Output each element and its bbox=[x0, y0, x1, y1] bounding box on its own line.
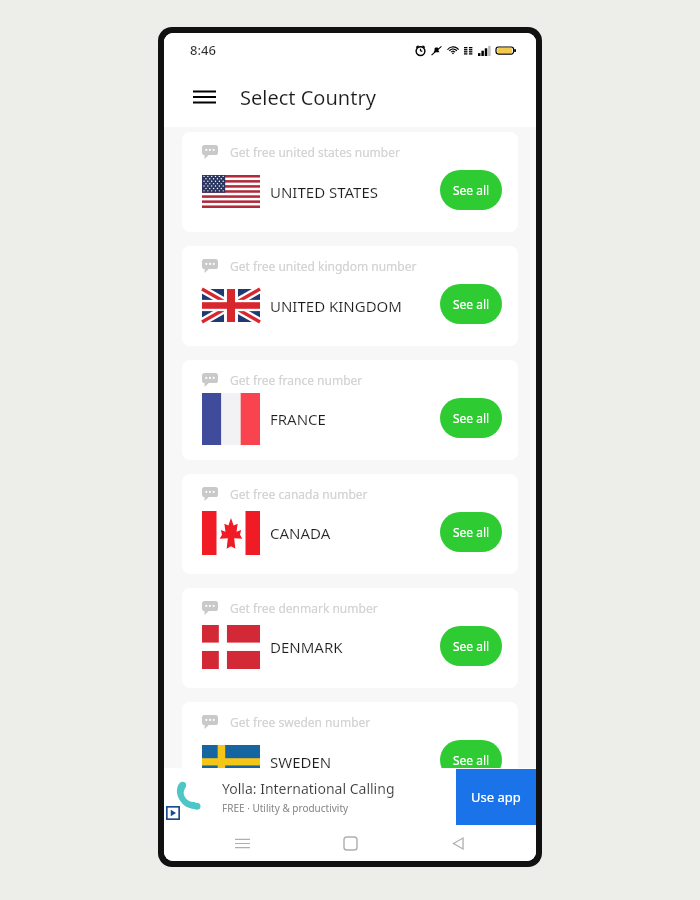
staticText: Select Country bbox=[240, 84, 376, 111]
staticText: See all bbox=[453, 182, 490, 198]
staticText: Yolla: International Calling bbox=[222, 779, 395, 798]
button[interactable]: See all bbox=[440, 398, 502, 438]
button[interactable]: Get free united kingdom number bbox=[182, 246, 518, 346]
staticText: FREE · Utility & productivity bbox=[222, 801, 349, 815]
button[interactable]: Get free france number bbox=[182, 360, 518, 460]
staticText: See all bbox=[453, 296, 490, 312]
staticText: See all bbox=[453, 410, 490, 426]
button[interactable]: Get free sweden number bbox=[182, 702, 518, 802]
button[interactable]: See all bbox=[440, 284, 502, 324]
staticText: CANADA bbox=[270, 523, 331, 543]
button[interactable]: Get free denmark number bbox=[182, 588, 518, 688]
staticText: See all bbox=[453, 524, 490, 540]
staticText: Use app bbox=[471, 788, 521, 806]
button[interactable]: Open navigation menu bbox=[184, 77, 224, 117]
button[interactable]: Get free united states number bbox=[182, 132, 518, 232]
staticText: Get free sweden number bbox=[230, 714, 371, 730]
staticText: Get free canada number bbox=[230, 486, 368, 502]
staticText: Get free denmark number bbox=[230, 600, 378, 616]
button[interactable]: See all bbox=[440, 626, 502, 666]
button[interactable]: Yolla: International Calling bbox=[164, 768, 536, 826]
staticText: SWEDEN bbox=[270, 752, 332, 772]
button[interactable]: Get free canada number bbox=[182, 474, 518, 574]
staticText: DENMARK bbox=[270, 637, 343, 657]
staticText: Get free france number bbox=[230, 372, 363, 388]
button[interactable]: See all bbox=[440, 512, 502, 552]
button[interactable]: Home bbox=[332, 826, 368, 861]
staticText: Get free united kingdom number bbox=[230, 258, 417, 274]
staticText: FRANCE bbox=[270, 409, 326, 429]
staticText: See all bbox=[453, 752, 490, 768]
button[interactable]: Use app bbox=[456, 769, 536, 825]
staticText: UNITED STATES bbox=[270, 182, 378, 202]
button[interactable]: Back bbox=[440, 826, 476, 861]
button[interactable]: See all bbox=[440, 740, 502, 780]
button[interactable]: Recent apps bbox=[224, 826, 260, 861]
staticText: See all bbox=[453, 638, 490, 654]
staticText: 8:46 bbox=[190, 41, 216, 59]
staticText: UNITED KINGDOM bbox=[270, 296, 402, 316]
staticText: Get free united states number bbox=[230, 144, 400, 160]
button[interactable]: See all bbox=[440, 170, 502, 210]
